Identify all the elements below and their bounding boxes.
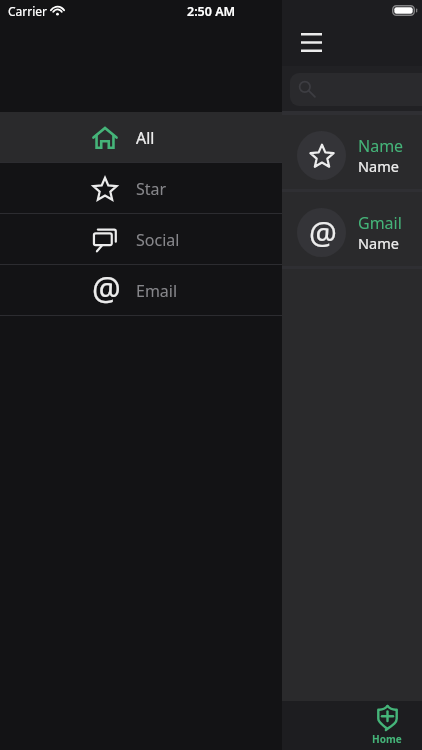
button[interactable]: @ (0, 265, 282, 316)
staticText: Social (136, 229, 180, 251)
button[interactable]: @ (282, 192, 422, 269)
staticText: @ (92, 267, 118, 311)
staticText: Home (372, 732, 402, 746)
button[interactable]: All (0, 112, 282, 163)
staticText: 2:50 AM (187, 3, 236, 20)
staticText: Name (358, 233, 399, 253)
staticText: All (136, 127, 155, 149)
staticText: Email (136, 280, 178, 302)
button[interactable]: Home (355, 701, 419, 750)
staticText: Star (136, 178, 167, 200)
staticText: Gmail (358, 212, 402, 234)
button[interactable]: Open navigation menu (288, 24, 334, 60)
staticText: @ (309, 211, 337, 253)
button[interactable]: Star (0, 163, 282, 214)
staticText: Name (358, 156, 399, 176)
staticText: Carrier (8, 3, 48, 19)
staticText: Name (358, 135, 404, 157)
button[interactable]: Social (0, 214, 282, 265)
button[interactable]: Name (282, 115, 422, 192)
